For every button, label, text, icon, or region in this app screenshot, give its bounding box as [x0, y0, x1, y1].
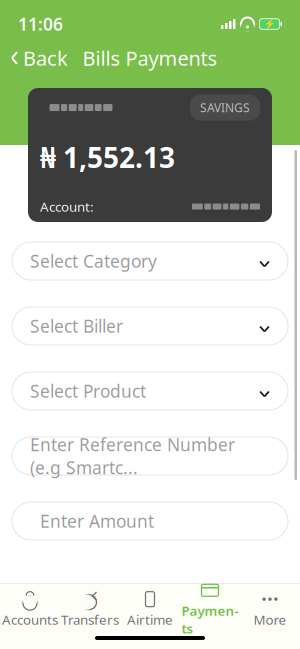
staticText: Select Category	[30, 249, 157, 272]
button[interactable]: Payments	[180, 580, 240, 639]
staticText: Bills Payments	[82, 45, 217, 71]
button[interactable]: Airtime	[120, 589, 180, 630]
staticText: ₦ 1,552.13	[40, 138, 175, 176]
staticText: Payments	[181, 602, 238, 637]
staticText: Select Product	[30, 379, 146, 402]
staticText: ⚡	[263, 19, 275, 29]
staticText: Accounts	[2, 611, 58, 628]
staticText: More	[253, 611, 286, 628]
button[interactable]: Accounts	[0, 589, 60, 630]
button[interactable]: Enter Reference Number (e.g Smartc...	[12, 437, 288, 475]
staticText: Account:	[40, 198, 94, 215]
staticText: Transfers	[61, 611, 119, 628]
button[interactable]: Select Biller	[12, 307, 288, 345]
button[interactable]: Enter Amount	[12, 502, 288, 540]
button[interactable]: Transfers	[60, 589, 120, 630]
staticText: Select Biller	[30, 314, 123, 337]
button[interactable]: More	[240, 589, 300, 630]
staticText: Enter Reference Number (e.g Smartc...	[30, 433, 235, 479]
staticText: 11:06	[18, 12, 63, 35]
staticText: SAVINGS	[200, 100, 250, 115]
button[interactable]: Select Category	[12, 242, 288, 280]
staticText: Back	[23, 45, 68, 71]
staticText: Airtime	[127, 611, 173, 628]
staticText: Enter Amount	[40, 509, 154, 532]
button[interactable]: Select Product	[12, 372, 288, 410]
button[interactable]: Back	[0, 39, 78, 77]
